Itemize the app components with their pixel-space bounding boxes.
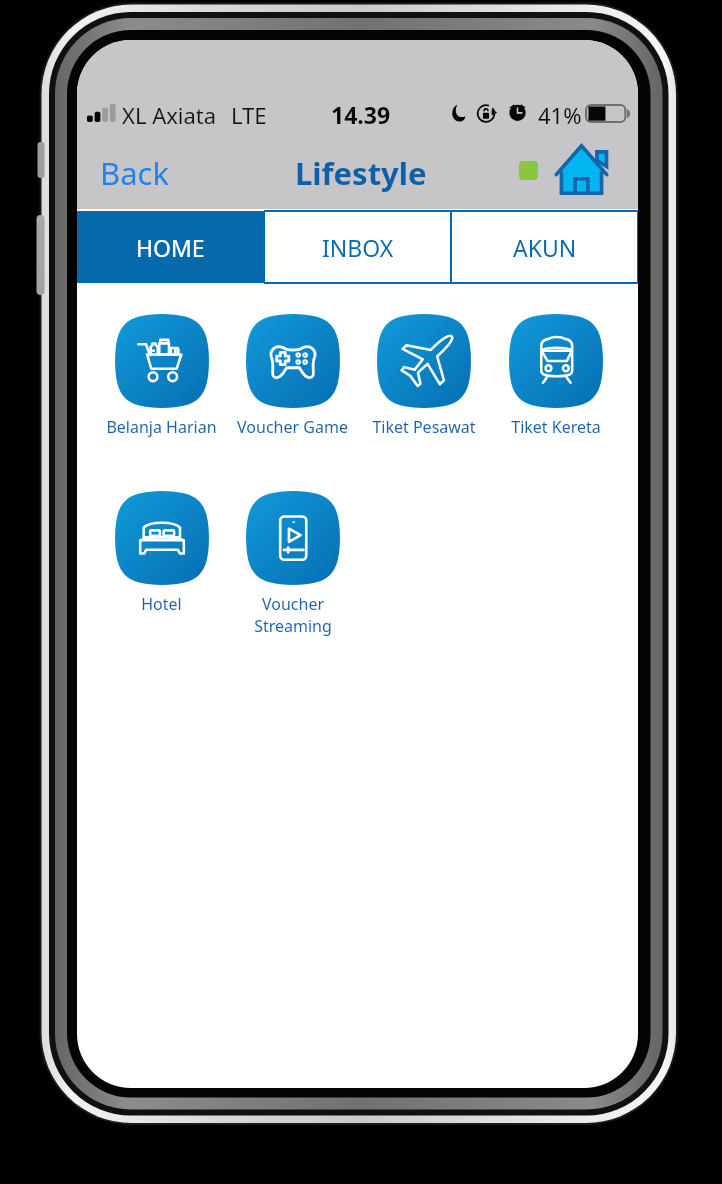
button[interactable]: Belanja Harian bbox=[96, 314, 227, 438]
button[interactable]: Tiket Pesawat bbox=[358, 314, 490, 438]
staticText: 14.39 bbox=[331, 99, 391, 130]
staticText: AKUN bbox=[513, 232, 577, 263]
staticText: INBOX bbox=[322, 232, 394, 263]
staticText: Tiket Kereta bbox=[511, 416, 601, 438]
button[interactable]: Back bbox=[100, 152, 169, 194]
staticText: Hotel bbox=[141, 593, 182, 615]
staticText: XL Axiata bbox=[122, 100, 217, 130]
staticText: 41% bbox=[538, 100, 582, 130]
button[interactable]: Home bbox=[554, 143, 609, 194]
button[interactable]: INBOX bbox=[264, 211, 451, 283]
button[interactable]: Tiket Kereta bbox=[490, 314, 622, 438]
staticText: HOME bbox=[136, 232, 205, 263]
button[interactable]: HOME bbox=[77, 211, 264, 283]
staticText: Tiket Pesawat bbox=[372, 416, 476, 438]
button[interactable]: Voucher Streaming bbox=[227, 491, 358, 637]
button[interactable]: AKUN bbox=[451, 211, 638, 283]
staticText: Voucher Game bbox=[237, 416, 348, 438]
staticText: Voucher Streaming bbox=[254, 593, 332, 637]
button[interactable]: Hotel bbox=[96, 491, 227, 615]
staticText: Belanja Harian bbox=[106, 416, 217, 438]
staticText: Lifestyle bbox=[295, 152, 427, 194]
staticText: Back bbox=[100, 152, 169, 194]
staticText: LTE bbox=[231, 100, 267, 130]
button[interactable]: Voucher Game bbox=[227, 314, 358, 438]
